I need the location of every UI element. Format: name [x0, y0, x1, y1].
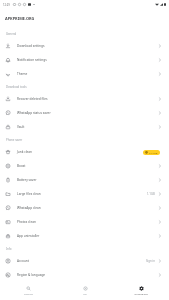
staticText: 2.77GB: [149, 151, 158, 154]
staticText: APKPRIME.ORG: [134, 293, 148, 296]
button[interactable]: WhatsApp clean: [0, 201, 169, 215]
staticText: Notification settings: [17, 58, 47, 62]
staticText: Boost: [17, 164, 26, 168]
button[interactable]: Account: [0, 254, 169, 268]
staticText: Battery saver: [17, 178, 37, 182]
staticText: Theme: [17, 72, 28, 76]
button[interactable]: App uninstaller: [0, 229, 169, 243]
button[interactable]: Recover deleted files: [0, 92, 169, 106]
staticText: App uninstaller: [17, 234, 40, 238]
staticText: Region & language: [17, 273, 46, 277]
button[interactable]: Battery saver: [0, 173, 169, 187]
button[interactable]: Vault: [0, 120, 169, 134]
staticText: WhatsApp status saver: [17, 111, 51, 115]
staticText: Download: [24, 293, 33, 296]
button[interactable]: Download: [0, 286, 57, 296]
staticText: Account: [17, 259, 29, 263]
button[interactable]: Download settings: [0, 39, 169, 53]
staticText: Download settings: [17, 44, 45, 48]
staticText: Info: [6, 247, 12, 251]
staticText: Vault: [17, 125, 25, 129]
button[interactable]: WhatsApp status saver: [0, 106, 169, 120]
button[interactable]: Theme: [0, 67, 169, 81]
staticText: Sign in: [146, 259, 155, 263]
staticText: Junk clean: [17, 150, 33, 154]
staticText: Play: [83, 293, 87, 296]
button[interactable]: Notification settings: [0, 53, 169, 67]
staticText: Photos clean: [17, 220, 36, 224]
staticText: Large files clean: [17, 192, 41, 196]
staticText: General: [6, 32, 17, 36]
staticText: WhatsApp clean: [17, 206, 41, 210]
staticText: 1.1GB: [147, 192, 155, 196]
staticText: Recover deleted files: [17, 97, 48, 101]
button[interactable]: APKPRIME.ORG: [113, 286, 169, 296]
button[interactable]: Boost: [0, 159, 169, 173]
staticText: APKPRIME.ORG: [5, 16, 35, 21]
button[interactable]: Play: [57, 286, 113, 296]
staticText: Phone saver: [6, 138, 23, 142]
button[interactable]: Photos clean: [0, 215, 169, 229]
button[interactable]: Large files clean: [0, 187, 169, 201]
button[interactable]: Region & language: [0, 268, 169, 282]
staticText: 12:29: [3, 3, 10, 7]
staticText: Download tools: [6, 85, 27, 89]
button[interactable]: Junk clean: [0, 145, 169, 159]
